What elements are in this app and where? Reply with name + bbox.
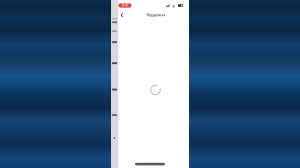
button[interactable]: Back: [118, 10, 126, 20]
staticText: 9:41: [122, 4, 128, 7]
staticText: Поддержка: [146, 13, 165, 17]
